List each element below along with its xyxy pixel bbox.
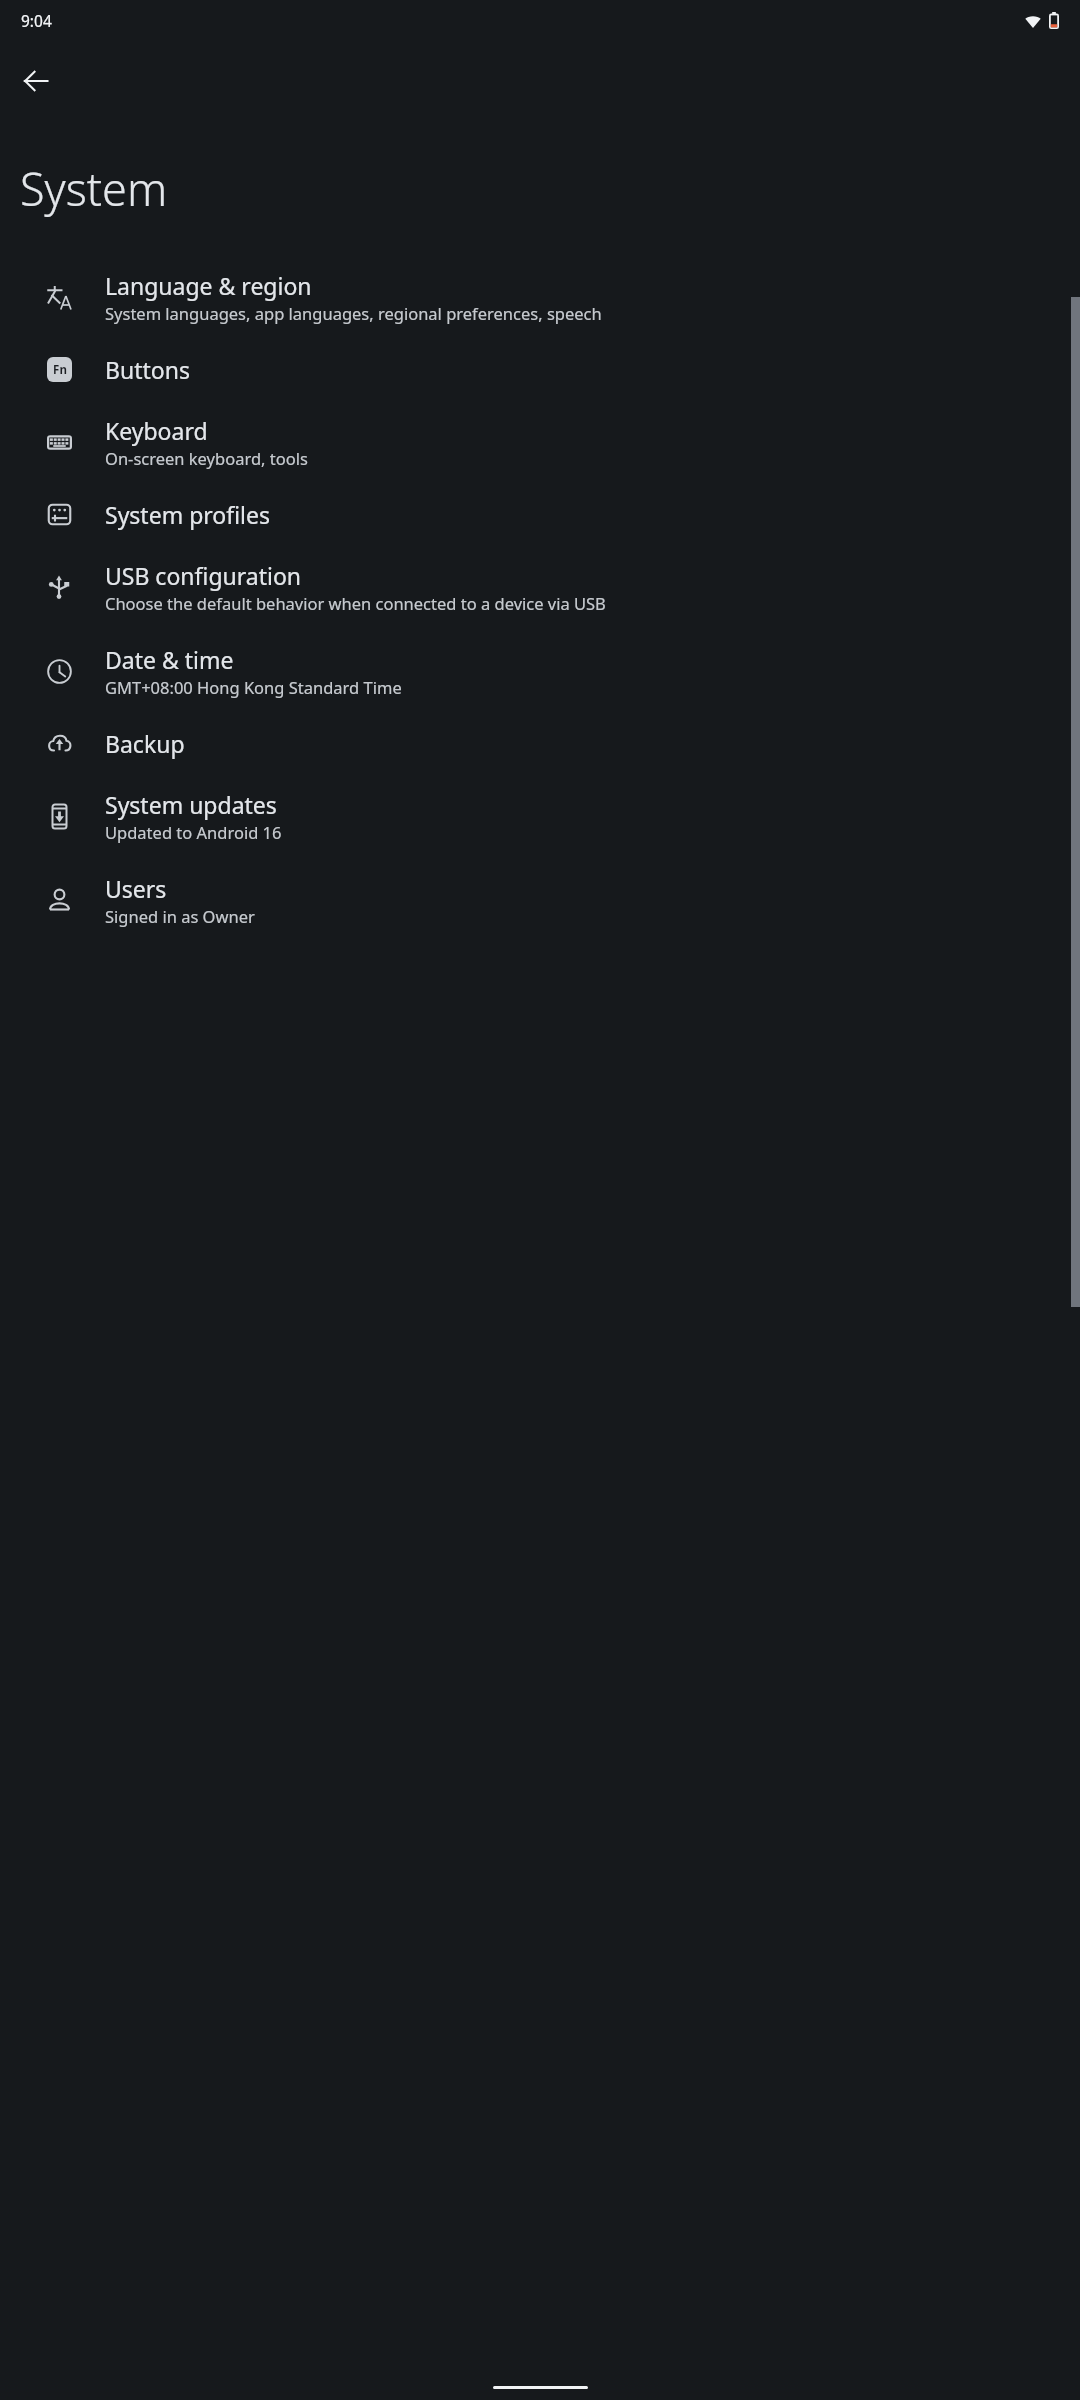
- button[interactable]: USB configuration: [0, 545, 1080, 629]
- button[interactable]: System updates: [0, 774, 1080, 858]
- staticText: Signed in as Owner: [105, 905, 255, 927]
- button[interactable]: Date & time: [0, 629, 1080, 713]
- staticText: Backup: [105, 728, 185, 759]
- staticText: Choose the default behavior when connect…: [105, 592, 606, 614]
- staticText: Fn: [53, 362, 67, 378]
- staticText: System updates: [105, 789, 277, 820]
- staticText: GMT+08:00 Hong Kong Standard Time: [105, 676, 402, 698]
- button[interactable]: Keyboard: [0, 400, 1080, 484]
- staticText: Users: [105, 873, 167, 904]
- staticText: System profiles: [105, 499, 271, 530]
- button[interactable]: Users: [0, 858, 1080, 942]
- staticText: System: [20, 158, 168, 219]
- staticText: Language & region: [105, 270, 312, 301]
- staticText: Date & time: [105, 644, 234, 675]
- button[interactable]: System profiles: [0, 484, 1080, 545]
- button[interactable]: Back: [7, 52, 65, 110]
- staticText: USB configuration: [105, 560, 302, 591]
- button[interactable]: Fn: [0, 339, 1080, 400]
- button[interactable]: Backup: [0, 713, 1080, 774]
- staticText: 9:04: [21, 10, 52, 31]
- button[interactable]: Language & region: [0, 255, 1080, 339]
- staticText: Buttons: [105, 354, 190, 385]
- staticText: Keyboard: [105, 415, 208, 446]
- staticText: System languages, app languages, regiona…: [105, 302, 602, 324]
- staticText: Updated to Android 16: [105, 821, 282, 843]
- staticText: On-screen keyboard, tools: [105, 447, 308, 469]
